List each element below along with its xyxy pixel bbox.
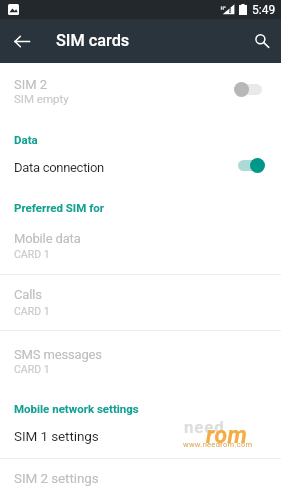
staticText: Mobile network settings: [14, 402, 139, 415]
button[interactable]: SMS messages: [0, 331, 281, 388]
staticText: rom: [206, 422, 248, 449]
button[interactable]: SIM 1 settings: [0, 422, 281, 459]
staticText: 5:49: [252, 3, 276, 17]
button[interactable]: Calls: [0, 275, 281, 331]
staticText: Calls: [14, 287, 42, 302]
staticText: CARD 1: [14, 305, 50, 317]
staticText: need: [184, 417, 225, 437]
button[interactable]: Data connection: [0, 151, 281, 184]
staticText: Data: [14, 133, 38, 146]
staticText: SIM empty: [14, 92, 69, 105]
button[interactable]: Data connection on: [238, 157, 270, 173]
staticText: Preferred SIM for: [14, 201, 104, 214]
button[interactable]: Search: [237, 19, 281, 63]
button[interactable]: SIM 2 settings: [0, 459, 281, 500]
button[interactable]: SIM 2: [0, 63, 281, 113]
staticText: SIM 1 settings: [14, 428, 99, 444]
staticText: www.needrom.com: [183, 440, 253, 449]
staticText: SIM 2: [14, 77, 48, 92]
staticText: SMS messages: [14, 347, 102, 362]
staticText: SIM cards: [56, 31, 130, 50]
staticText: CARD 1: [14, 248, 50, 260]
staticText: CARD 1: [14, 363, 50, 375]
button[interactable]: Navigate up: [0, 19, 44, 63]
staticText: Data connection: [14, 160, 104, 175]
staticText: SIM 2 settings: [14, 470, 99, 486]
button[interactable]: Mobile data: [0, 218, 281, 275]
button[interactable]: SIM 2 off: [234, 81, 266, 97]
staticText: Mobile data: [14, 231, 81, 246]
